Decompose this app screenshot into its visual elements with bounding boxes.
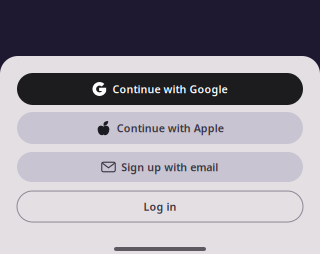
button[interactable]: Continue with Google xyxy=(17,73,303,105)
staticText: Sign up with email xyxy=(121,160,218,174)
staticText: Continue with Apple xyxy=(117,121,224,135)
staticText: Continue with Google xyxy=(112,82,227,96)
button[interactable]: Log in xyxy=(17,191,303,222)
button[interactable]: Continue with Apple xyxy=(17,112,303,144)
staticText: Log in xyxy=(143,199,176,214)
button[interactable]: Sign up with email xyxy=(17,152,303,182)
